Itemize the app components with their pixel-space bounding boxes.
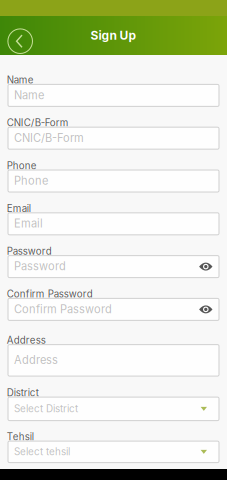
staticText: Name [7,74,34,86]
staticText: Select District [14,403,78,414]
staticText: Password [7,245,52,257]
staticText: Address [14,353,58,367]
staticText: Sign Up [90,28,136,43]
button[interactable]: Phone [8,170,219,192]
staticText: Tehsil [7,431,34,443]
staticText: District [7,387,39,399]
button[interactable]: Select tehsil [8,441,219,463]
button[interactable]: Address [8,345,219,376]
staticText: Name [14,88,44,102]
staticText: Phone [14,174,48,187]
button[interactable]: Email [8,213,219,235]
button[interactable]: Name [8,84,219,106]
staticText: CNIC/B-Form [14,131,84,145]
button[interactable]: Confirm Password [8,298,219,320]
staticText: Password [14,260,66,273]
staticText: Select tehsil [14,446,70,457]
staticText: Phone [7,160,37,171]
staticText: Address [7,334,46,346]
staticText: Email [14,217,43,230]
staticText: Confirm Password [14,302,112,316]
staticText: Email [7,202,31,214]
button[interactable]: Select District [8,397,219,421]
button[interactable]: Back [4,22,36,61]
button[interactable]: Password [8,256,219,278]
button[interactable]: CNIC/B-Form [8,127,219,149]
staticText: CNIC/B-Form [7,117,69,129]
staticText: Confirm Password [7,288,93,300]
